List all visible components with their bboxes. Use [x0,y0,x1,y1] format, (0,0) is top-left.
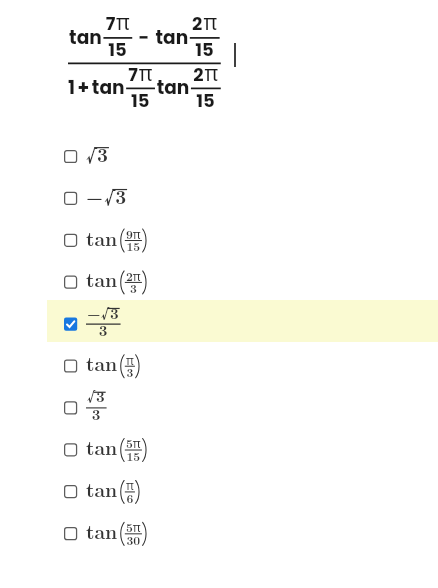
button[interactable]: Option tan(5π/15) [0,429,438,471]
button[interactable]: Option tan(9π/15) [0,219,438,261]
button[interactable]: Option −√3 [0,177,438,219]
button[interactable]: Option tan(π/6) [0,471,438,513]
button[interactable]: Option √3/3 [0,387,438,429]
button[interactable]: Option tan(5π/30) [0,513,438,555]
button[interactable]: Option tan(π/3) [0,345,438,387]
button[interactable]: Option −√3/3 [0,303,438,345]
button[interactable]: Option tan(2π/3) [0,261,438,303]
button[interactable]: Option √3 [0,136,438,178]
